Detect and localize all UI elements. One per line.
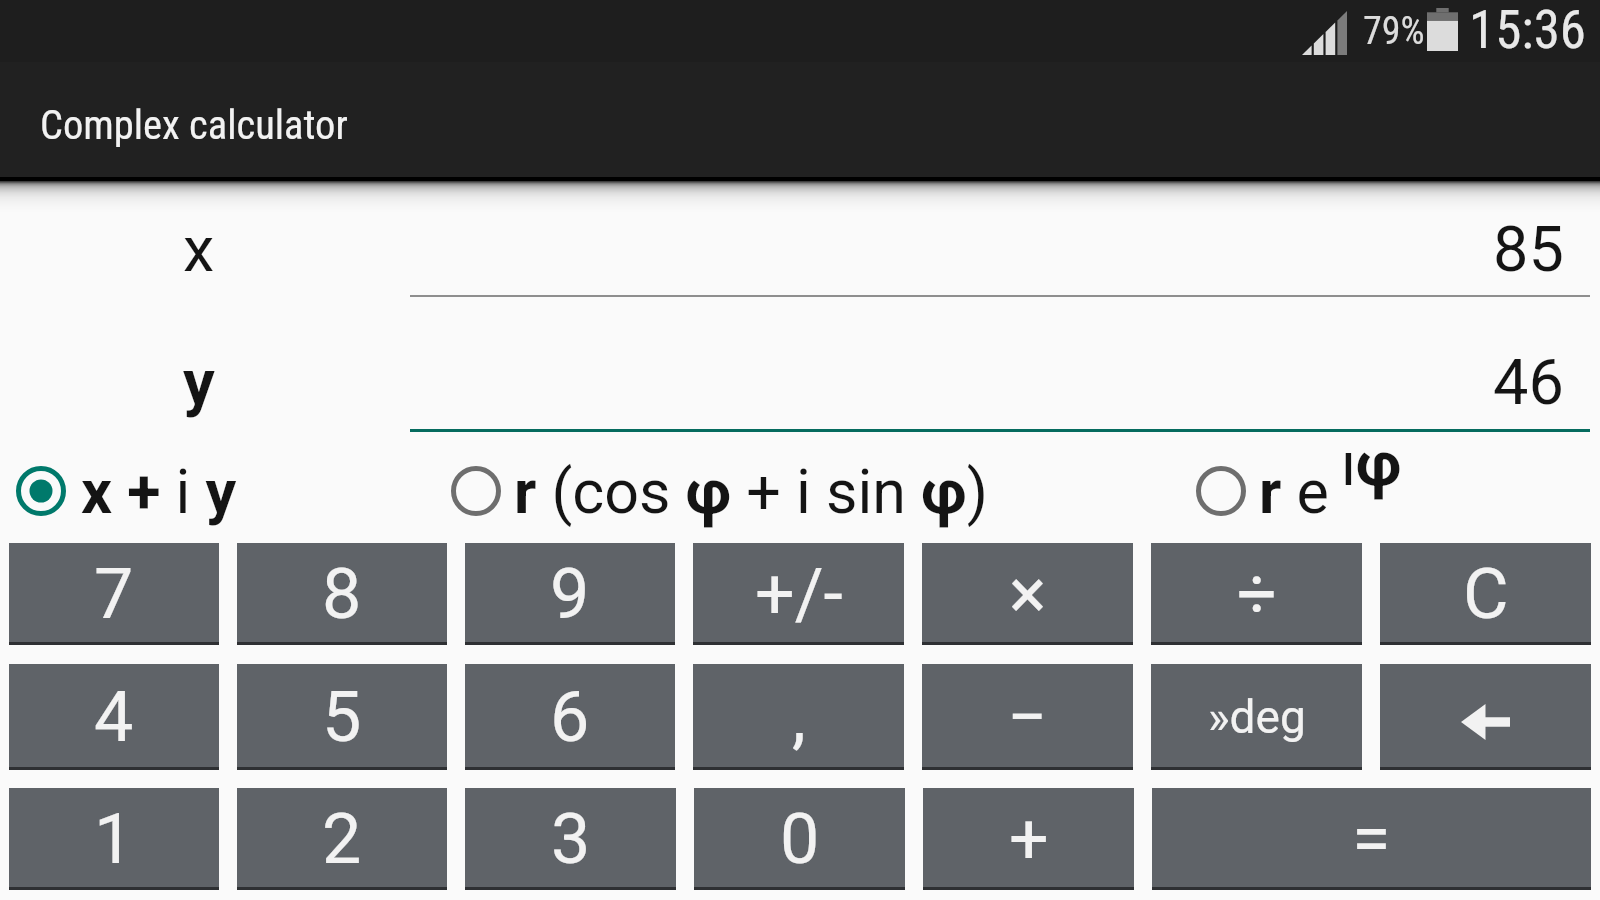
staticText: y xyxy=(183,346,215,420)
staticText: − xyxy=(1007,676,1048,758)
button[interactable]: r e xyxy=(1180,437,1600,544)
staticText: + xyxy=(1009,798,1049,880)
button[interactable]: Field y xyxy=(410,343,1590,419)
staticText: 9 xyxy=(550,553,590,635)
button[interactable]: 5 xyxy=(237,664,447,770)
button[interactable]: + xyxy=(923,788,1134,890)
staticText: 15:36 xyxy=(1469,0,1587,61)
staticText: 0 xyxy=(780,798,820,880)
staticText: , xyxy=(792,676,806,758)
staticText: ÷ xyxy=(1237,553,1277,635)
staticText: 3 xyxy=(551,798,591,880)
button[interactable]: 1 xyxy=(9,788,219,890)
staticText: 5 xyxy=(322,676,362,758)
staticText: Complex calculator xyxy=(40,101,348,148)
staticText: x xyxy=(183,213,215,287)
staticText: x + i y xyxy=(81,456,237,527)
button[interactable]: × xyxy=(922,543,1133,645)
staticText: = xyxy=(1352,798,1391,880)
button[interactable]: − xyxy=(922,664,1133,770)
button[interactable]: 4 xyxy=(9,664,219,770)
staticText: 4 xyxy=(94,676,134,758)
staticText: 2 xyxy=(322,798,362,880)
button[interactable]: 0 xyxy=(694,788,905,890)
button[interactable]: C xyxy=(1380,543,1591,645)
staticText: C xyxy=(1463,553,1509,635)
button[interactable]: x + i y xyxy=(0,437,436,544)
button[interactable]: ÷ xyxy=(1151,543,1362,645)
staticText: 8 xyxy=(322,553,362,635)
button[interactable]: Backspace xyxy=(1380,664,1591,770)
button[interactable]: 9 xyxy=(465,543,675,645)
button[interactable]: , xyxy=(693,664,904,770)
staticText: 1 xyxy=(94,798,134,880)
staticText: »deg xyxy=(1208,690,1306,744)
staticText: 85 xyxy=(1493,213,1564,287)
button[interactable]: Field x xyxy=(410,210,1590,286)
button[interactable]: 3 xyxy=(465,788,676,890)
button[interactable]: = xyxy=(1152,788,1591,890)
staticText: ıφ xyxy=(1341,428,1402,499)
button[interactable]: 8 xyxy=(237,543,447,645)
staticText: 79% xyxy=(1363,9,1425,54)
staticText: 46 xyxy=(1493,346,1564,420)
other: Backspace xyxy=(1461,704,1510,740)
staticText: 6 xyxy=(550,676,590,758)
staticText: 7 xyxy=(94,553,134,635)
staticText: r (cos φ + i sin φ) xyxy=(514,456,988,527)
button[interactable]: 7 xyxy=(9,543,219,645)
staticText: × xyxy=(1009,553,1047,635)
button[interactable]: +/- xyxy=(693,543,904,645)
button[interactable]: 2 xyxy=(237,788,447,890)
button[interactable]: 6 xyxy=(465,664,675,770)
staticText: r e xyxy=(1259,456,1329,527)
button[interactable]: »deg xyxy=(1151,664,1362,770)
staticText: +/- xyxy=(755,553,843,635)
button[interactable]: r (cos φ + i sin φ) xyxy=(435,437,1179,544)
